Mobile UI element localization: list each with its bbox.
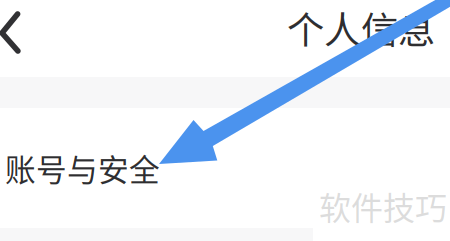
staticText: 个人信息 (287, 1, 435, 55)
button[interactable]: Back (0, 0, 46, 66)
staticText: 账号与安全 (5, 146, 160, 190)
staticText: 软件技巧 (319, 183, 447, 229)
button[interactable]: 账号与安全 (0, 108, 450, 228)
